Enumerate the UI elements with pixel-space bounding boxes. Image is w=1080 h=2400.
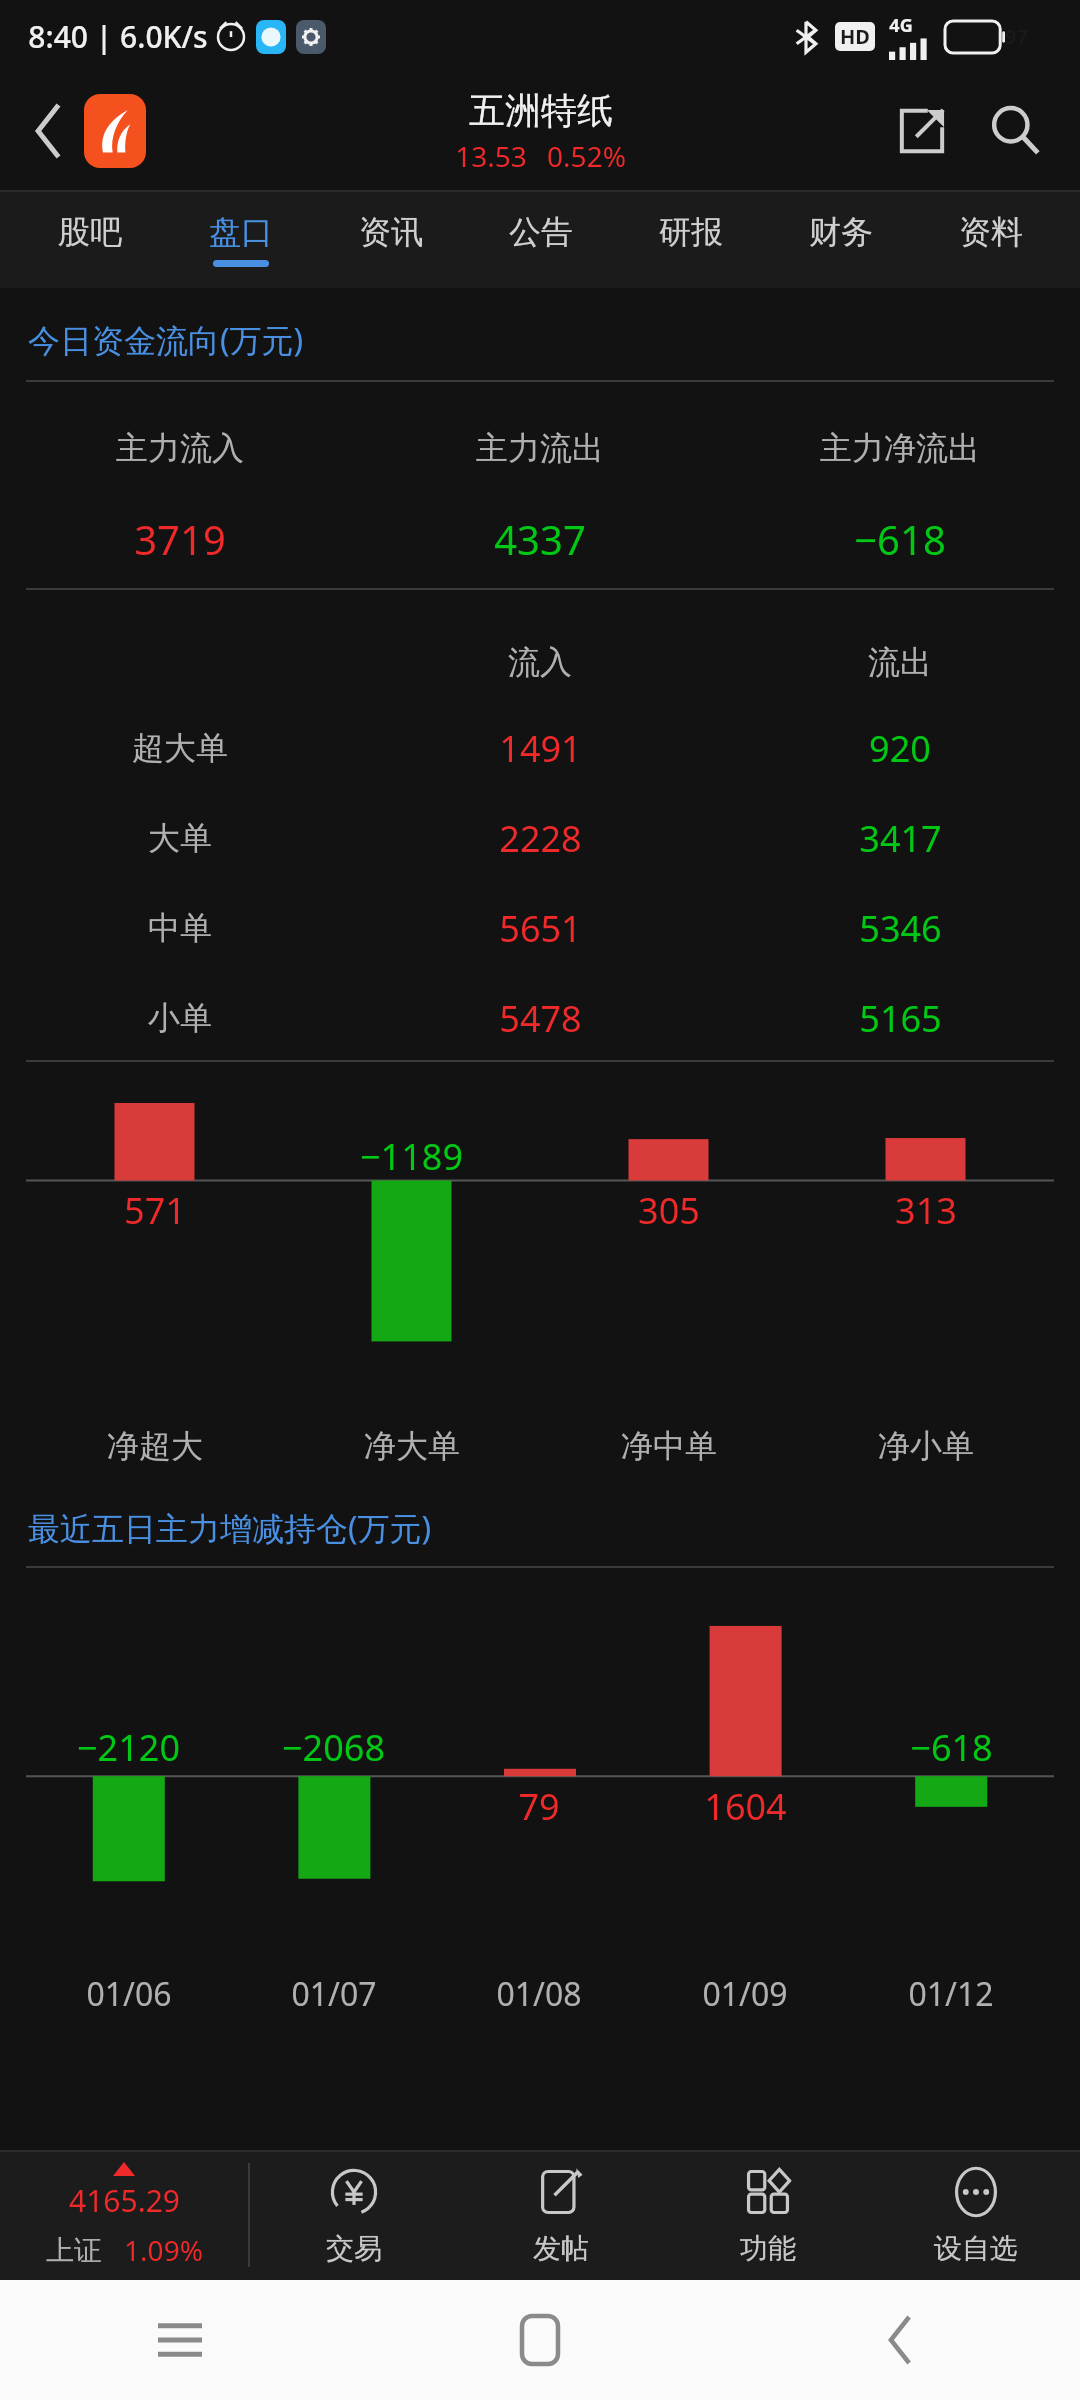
staticText: 财务: [809, 212, 873, 252]
staticText: 今日资金流向(万元): [28, 318, 304, 362]
button[interactable]: 研报: [616, 190, 766, 288]
staticText: 1.09%: [124, 2231, 203, 2269]
button[interactable]: Back: [14, 86, 84, 176]
button[interactable]: Search: [974, 86, 1058, 176]
button[interactable]: 盘口: [165, 190, 316, 288]
staticText: 大单: [148, 818, 212, 858]
staticText: 最近五日主力增减持仓(万元): [28, 1506, 432, 1550]
button[interactable]: Recents: [135, 2295, 225, 2385]
staticText: 主力流入: [116, 428, 244, 468]
staticText: 净超大: [107, 1426, 203, 1466]
button[interactable]: 设自选: [872, 2150, 1080, 2280]
staticText: 01/08: [496, 1972, 582, 2016]
staticText: −618: [854, 512, 946, 566]
button[interactable]: 财务: [766, 190, 916, 288]
staticText: 主力净流出: [820, 428, 980, 468]
staticText: 305: [638, 1186, 700, 1235]
button[interactable]: 股吧: [14, 190, 165, 288]
staticText: 5478: [499, 994, 582, 1042]
button[interactable]: Share: [880, 86, 964, 176]
button[interactable]: 资料: [916, 190, 1066, 288]
staticText: 流出: [868, 642, 932, 682]
staticText: 920: [869, 724, 931, 772]
staticText: −2068: [282, 1723, 385, 1772]
staticText: 4G: [889, 13, 913, 38]
staticText: 5346: [859, 904, 942, 952]
staticText: 流入: [508, 642, 572, 682]
staticText: 盘口: [209, 212, 273, 252]
staticText: 净大单: [364, 1426, 460, 1466]
button[interactable]: 公告: [466, 190, 616, 288]
staticText: 中单: [148, 908, 212, 948]
staticText: 01/06: [86, 1972, 172, 2016]
staticText: 五洲特纸: [469, 88, 613, 133]
staticText: 交易: [326, 2231, 382, 2266]
button[interactable]: 功能: [664, 2150, 872, 2280]
button[interactable]: 4165.29: [0, 2150, 248, 2280]
staticText: 净中单: [621, 1426, 717, 1466]
staticText: 设自选: [934, 2231, 1018, 2266]
staticText: 小单: [148, 998, 212, 1038]
staticText: −618: [910, 1723, 993, 1772]
staticText: 净小单: [878, 1426, 974, 1466]
button[interactable]: 资讯: [316, 190, 466, 288]
staticText: 3417: [859, 814, 942, 862]
staticText: 8:40 | 6.0K/s: [28, 16, 208, 57]
staticText: −2120: [77, 1723, 180, 1772]
button[interactable]: Home: [495, 2295, 585, 2385]
staticText: 4165.29: [69, 2180, 180, 2221]
staticText: 313: [895, 1186, 957, 1235]
staticText: 股吧: [58, 212, 122, 252]
staticText: 571: [124, 1186, 186, 1235]
staticText: 公告: [509, 212, 573, 252]
staticText: 主力流出: [476, 428, 604, 468]
staticText: 功能: [740, 2231, 796, 2266]
staticText: 01/09: [702, 1972, 788, 2016]
staticText: 3719: [134, 512, 226, 566]
staticText: 5165: [859, 994, 942, 1042]
staticText: 0.52%: [547, 137, 626, 175]
staticText: 发帖: [533, 2231, 589, 2266]
staticText: 4337: [494, 512, 586, 566]
staticText: −1189: [360, 1132, 463, 1181]
staticText: 上证: [46, 2233, 102, 2268]
staticText: 2228: [499, 814, 582, 862]
staticText: HD: [840, 23, 870, 50]
button[interactable]: Back: [855, 2295, 945, 2385]
staticText: 资讯: [359, 212, 423, 252]
staticText: 01/12: [908, 1972, 994, 2016]
staticText: 超大单: [132, 728, 228, 768]
staticText: 79: [518, 1782, 560, 1831]
staticText: 13.53: [455, 137, 527, 175]
button[interactable]: 交易: [250, 2150, 457, 2280]
staticText: 5651: [499, 904, 582, 952]
staticText: 01/07: [291, 1972, 377, 2016]
staticText: 资料: [959, 212, 1023, 252]
staticText: 研报: [659, 212, 723, 252]
button[interactable]: App logo: [84, 94, 146, 168]
staticText: 1491: [499, 724, 582, 772]
button[interactable]: 发帖: [457, 2150, 664, 2280]
staticText: 1604: [704, 1782, 787, 1831]
